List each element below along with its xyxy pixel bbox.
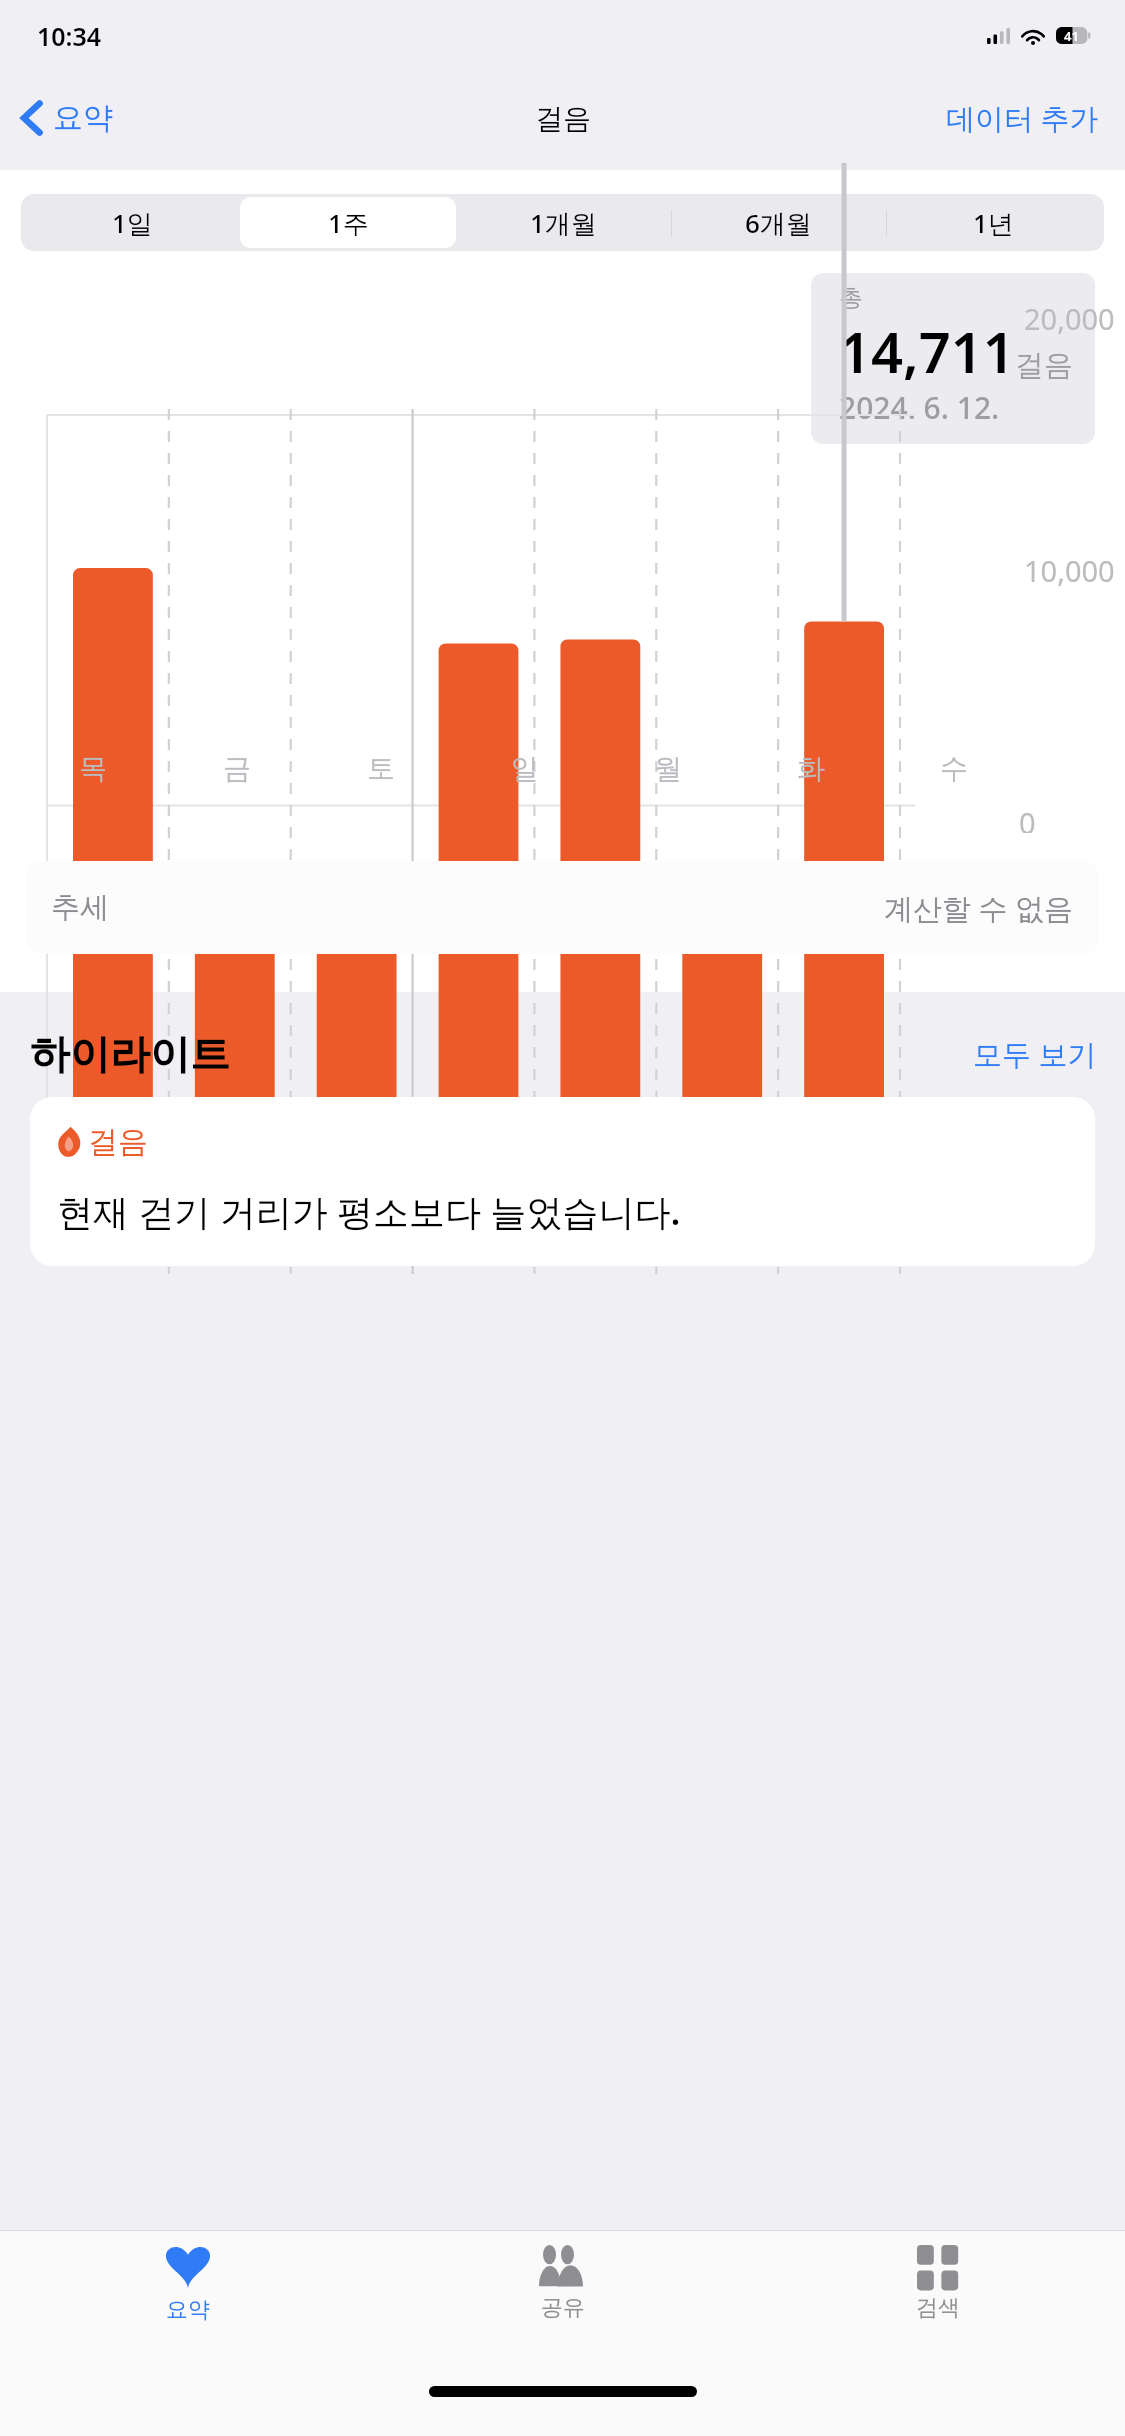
staticText: 1일 — [112, 205, 153, 241]
staticText: 월 — [654, 751, 682, 786]
staticText: 계산할 수 없음 — [884, 888, 1074, 928]
staticText: 10,000 — [1024, 551, 1115, 590]
staticText: 현재 걷기 거리가 평소보다 늘었습니다. — [57, 1187, 681, 1236]
staticText: 1개월 — [530, 205, 597, 241]
button[interactable]: 요약 — [0, 91, 127, 145]
staticText: 1년 — [973, 205, 1014, 241]
staticText: 추세 — [51, 889, 109, 926]
button[interactable]: 1개월 — [456, 197, 671, 248]
staticText: 0 — [1019, 803, 1036, 833]
button[interactable]: 모두 보기 — [973, 1034, 1097, 1074]
staticText: 일 — [511, 751, 539, 786]
button[interactable]: 공유 — [375, 2231, 750, 2359]
staticText: 41 — [1064, 27, 1079, 44]
button[interactable]: 1일 — [24, 197, 240, 248]
staticText: 걸음 — [535, 101, 591, 136]
staticText: 목 — [79, 751, 107, 786]
staticText: 걸음 — [88, 1123, 148, 1161]
staticText: 20,000 — [1024, 299, 1115, 338]
staticText: 1주 — [328, 205, 369, 241]
staticText: 요약 — [53, 99, 113, 137]
staticText: 화 — [797, 751, 825, 786]
staticText: 걸음 — [1015, 347, 1073, 384]
other: 공유 — [538, 2245, 588, 2287]
staticText: 공유 — [541, 2294, 585, 2322]
staticText: 수 — [940, 751, 968, 786]
staticText: 6개월 — [745, 205, 812, 241]
staticText: 토 — [367, 751, 395, 786]
other: 걸음 아이콘 — [57, 1126, 83, 1158]
button[interactable]: 데이터 추가 — [920, 88, 1125, 148]
button[interactable]: 6개월 — [671, 197, 886, 248]
staticText: 10:34 — [37, 19, 102, 53]
staticText: 검색 — [916, 2294, 960, 2322]
staticText: 요약 — [166, 2296, 210, 2324]
other: 검색 — [917, 2245, 959, 2287]
staticText: 2024. 6. 12. — [839, 387, 1000, 428]
staticText: 금 — [223, 751, 251, 786]
staticText: 총 — [839, 283, 863, 313]
staticText: 하이라이트 — [30, 1029, 230, 1079]
button[interactable]: 요약 — [0, 2231, 375, 2359]
button[interactable]: 1년 — [886, 197, 1101, 248]
staticText: 14,711 — [839, 313, 1015, 389]
button[interactable]: 1주 — [240, 197, 456, 248]
button[interactable]: 추세 — [26, 861, 1099, 954]
other: 요약 — [165, 2245, 211, 2289]
button[interactable]: 걸음 아이콘 — [30, 1097, 1095, 1266]
button[interactable]: 검색 — [750, 2231, 1125, 2359]
